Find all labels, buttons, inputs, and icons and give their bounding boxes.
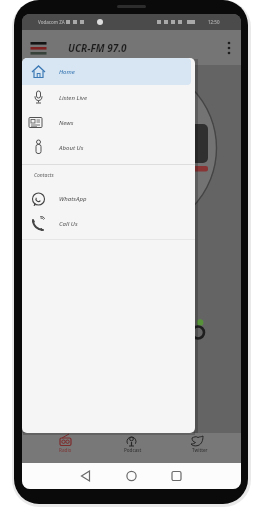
staticText: Contacts (34, 172, 54, 179)
button[interactable] (22, 135, 191, 160)
button[interactable] (22, 58, 191, 85)
staticText: News (59, 119, 74, 127)
staticText: Twitter (192, 447, 208, 453)
button[interactable] (22, 85, 191, 110)
staticText: WhatsApp (59, 195, 87, 203)
button[interactable] (175, 433, 220, 463)
button[interactable] (22, 211, 191, 236)
staticText: Home (59, 68, 75, 76)
staticText: 12:50 (208, 19, 220, 25)
staticText: Listen Live (59, 94, 88, 102)
button[interactable] (28, 38, 50, 58)
button[interactable] (22, 110, 191, 135)
button[interactable] (22, 186, 191, 211)
staticText: About Us (59, 144, 84, 152)
staticText: Podcast (124, 447, 142, 453)
staticText: Call Us (59, 220, 78, 228)
button[interactable] (221, 38, 237, 58)
button[interactable] (109, 433, 154, 463)
staticText: Radio (59, 447, 72, 453)
button[interactable] (43, 433, 88, 463)
staticText: UCR-FM 97.0 (68, 41, 127, 55)
button[interactable] (22, 30, 241, 65)
staticText: Vodacom ZA (38, 19, 65, 25)
